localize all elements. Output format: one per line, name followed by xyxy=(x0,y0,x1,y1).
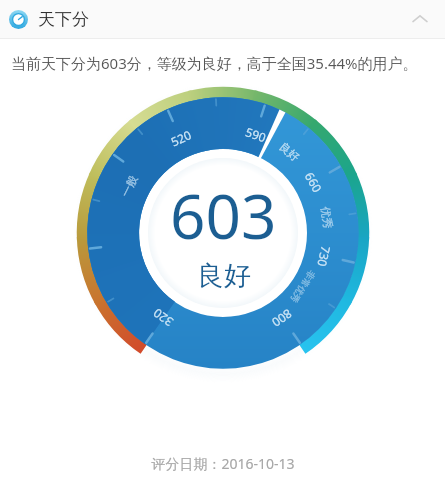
staticText: 320 xyxy=(150,305,176,330)
staticText: 590 xyxy=(243,123,268,145)
staticText: 优秀 xyxy=(318,206,335,229)
staticText: 良好 xyxy=(276,139,302,164)
staticText: 一般 xyxy=(118,173,140,199)
staticText: 良好 xyxy=(197,259,251,293)
staticText: 520 xyxy=(168,126,194,149)
button[interactable]: 天下分 xyxy=(0,0,445,38)
staticText: 800 xyxy=(269,306,295,331)
button[interactable]: Collapse xyxy=(407,6,433,32)
button[interactable]: 320 xyxy=(73,83,373,383)
staticText: 评分日期：2016-10-13 xyxy=(151,454,295,473)
staticText: 天下分 xyxy=(38,9,89,30)
staticText: 603 xyxy=(170,173,277,257)
staticText: 当前天下分为603分，等级为良好，高于全国35.44%的用户。 xyxy=(11,53,418,73)
staticText: 730 xyxy=(314,244,334,268)
staticText: 非常优秀 xyxy=(288,269,318,305)
staticText: 660 xyxy=(301,169,326,195)
